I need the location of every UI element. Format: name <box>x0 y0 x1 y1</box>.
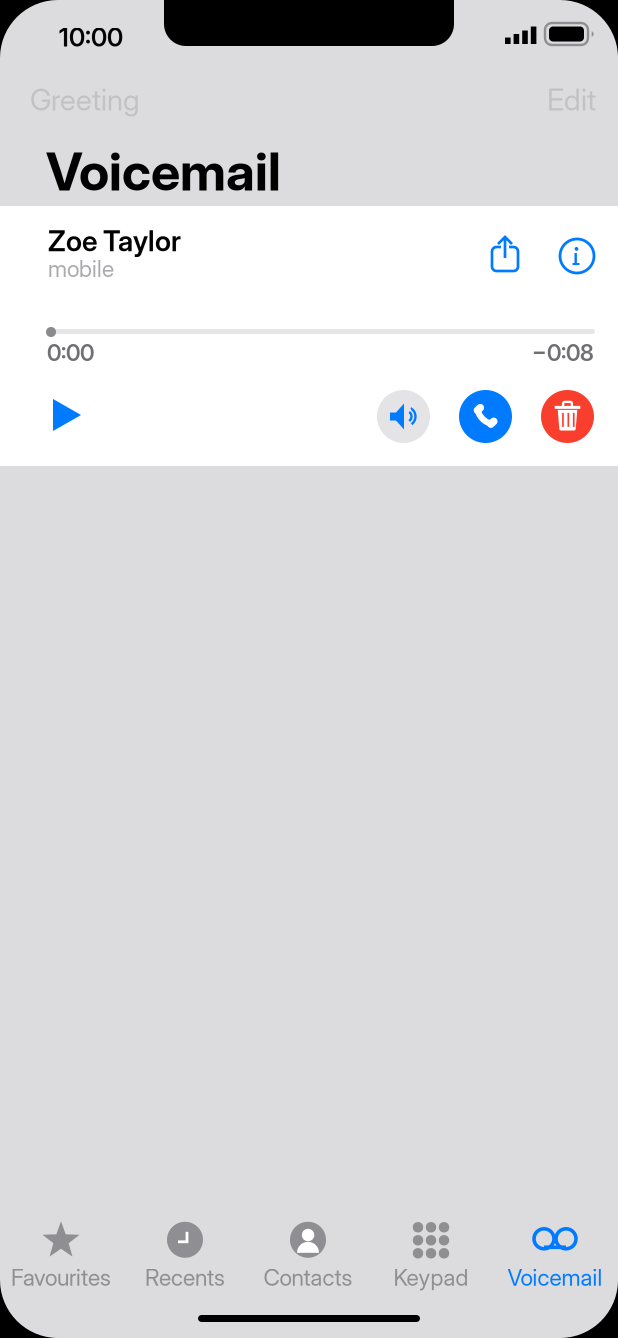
staticText: Keypad <box>393 1264 468 1291</box>
staticText: Edit <box>547 82 596 117</box>
button[interactable]: Voicemail <box>494 1218 616 1294</box>
staticText: Contacts <box>263 1264 352 1291</box>
staticText: Voicemail <box>46 140 281 203</box>
button[interactable]: Share <box>489 230 541 282</box>
button[interactable]: Details <box>556 233 604 281</box>
button[interactable]: Greeting <box>28 76 142 123</box>
button[interactable]: Delete <box>541 390 594 443</box>
button[interactable]: Keypad <box>370 1218 492 1294</box>
staticText: Favourites <box>11 1264 111 1291</box>
staticText: Greeting <box>30 82 140 117</box>
staticText: Zoe Taylor <box>48 224 181 258</box>
staticText: 10:00 <box>59 22 123 53</box>
button[interactable]: Contacts <box>247 1218 369 1294</box>
staticText: Recents <box>145 1264 225 1291</box>
button[interactable]: Call back <box>459 390 512 443</box>
button[interactable]: Speaker <box>377 390 430 443</box>
staticText: 0:00 <box>47 339 94 366</box>
staticText: Voicemail <box>507 1264 602 1291</box>
button[interactable]: Recents <box>124 1218 246 1294</box>
button[interactable]: Play <box>48 394 92 438</box>
staticText: −0:08 <box>532 339 594 366</box>
staticText: mobile <box>48 255 114 282</box>
button[interactable]: Favourites <box>0 1218 122 1294</box>
button[interactable]: Edit <box>545 76 598 123</box>
